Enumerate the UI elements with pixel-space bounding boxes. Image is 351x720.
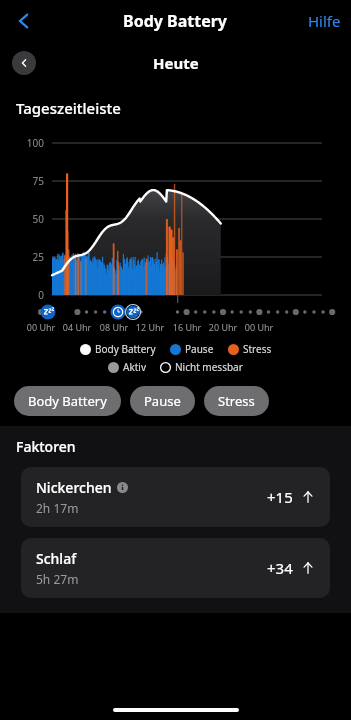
- staticText: Heute: [153, 53, 199, 73]
- button[interactable]: Stress: [228, 342, 272, 356]
- staticText: Pause: [144, 392, 181, 410]
- button[interactable]: Hilfe: [308, 11, 341, 31]
- staticText: 0: [12, 288, 44, 302]
- staticText: 50: [12, 212, 44, 226]
- button[interactable]: Pause: [130, 386, 195, 416]
- staticText: 04 Uhr: [55, 321, 99, 333]
- staticText: Faktoren: [16, 437, 76, 456]
- button[interactable]: Nickerchen: [21, 467, 330, 527]
- button[interactable]: Back: [6, 3, 42, 39]
- staticText: 20 Uhr: [201, 321, 245, 333]
- button[interactable]: Nicht messbar: [160, 360, 243, 374]
- button[interactable]: Pause: [170, 342, 214, 356]
- staticText: Body Battery: [95, 342, 156, 356]
- staticText: Body Battery: [28, 392, 107, 410]
- staticText: Body Battery: [123, 10, 228, 32]
- staticText: 00 Uhr: [237, 321, 281, 333]
- button[interactable]: Activity: [110, 304, 126, 320]
- staticText: 2h 17m: [36, 500, 79, 516]
- staticText: Hilfe: [308, 11, 341, 31]
- other: Info: [117, 482, 128, 493]
- button[interactable]: Sleep: [40, 304, 56, 320]
- staticText: Pause: [185, 342, 214, 356]
- staticText: 08 Uhr: [92, 321, 136, 333]
- staticText: 25: [12, 250, 44, 264]
- staticText: 100: [12, 136, 44, 150]
- staticText: Tageszeitleiste: [16, 98, 121, 118]
- staticText: 00 Uhr: [19, 321, 63, 333]
- staticText: Stress: [218, 392, 255, 410]
- staticText: Nicht messbar: [175, 360, 243, 374]
- button[interactable]: Body Battery: [80, 342, 156, 356]
- staticText: Aktiv: [123, 360, 146, 374]
- staticText: Schlaf: [36, 549, 77, 568]
- button[interactable]: Schlaf: [21, 538, 330, 598]
- button[interactable]: Stress: [204, 386, 269, 416]
- button[interactable]: Aktiv: [108, 360, 146, 374]
- staticText: Nickerchen: [36, 478, 112, 497]
- staticText: +34: [267, 558, 293, 578]
- staticText: 5h 27m: [36, 571, 79, 587]
- staticText: 16 Uhr: [165, 321, 209, 333]
- staticText: +15: [267, 487, 293, 507]
- button[interactable]: Previous day: [12, 51, 36, 75]
- button[interactable]: Sleep: [125, 304, 141, 320]
- staticText: Stress: [243, 342, 272, 356]
- staticText: 75: [12, 174, 44, 188]
- button[interactable]: Body Battery: [14, 386, 121, 416]
- staticText: 12 Uhr: [128, 321, 172, 333]
